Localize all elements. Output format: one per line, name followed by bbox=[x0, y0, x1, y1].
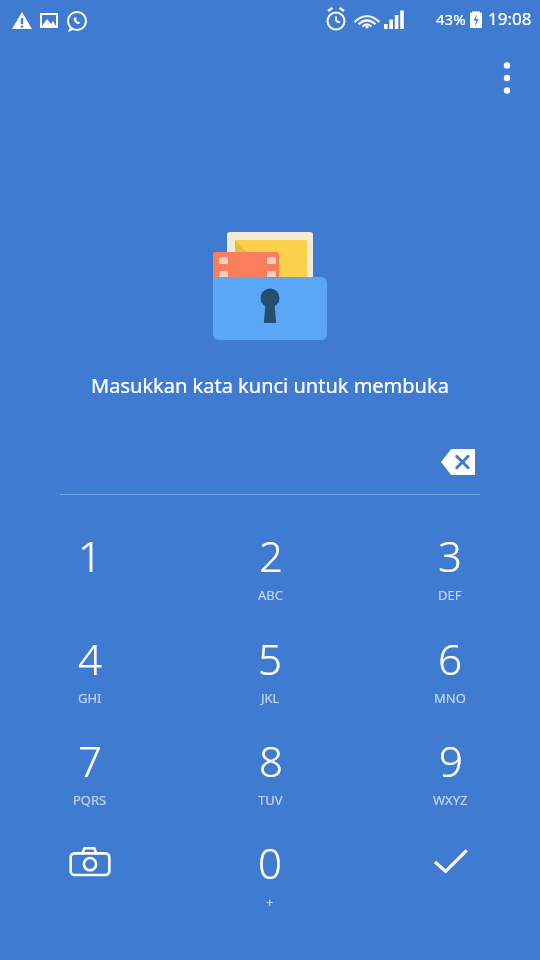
staticText: 5 bbox=[258, 630, 282, 687]
staticText: TUV bbox=[258, 791, 283, 809]
button[interactable]: 6 bbox=[360, 618, 540, 718]
button[interactable]: Confirm bbox=[360, 822, 540, 932]
button[interactable]: More options bbox=[484, 52, 530, 104]
button[interactable]: 1 bbox=[0, 515, 180, 615]
button[interactable]: Camera bbox=[0, 822, 180, 932]
button[interactable]: Backspace bbox=[428, 432, 488, 492]
staticText: PQRS bbox=[73, 791, 107, 809]
button[interactable]: 7 bbox=[0, 720, 180, 820]
button[interactable]: 0 bbox=[180, 822, 360, 932]
staticText: 0 bbox=[258, 834, 282, 891]
staticText: 3 bbox=[438, 527, 462, 584]
button[interactable]: 4 bbox=[0, 618, 180, 718]
staticText: + bbox=[266, 893, 274, 911]
staticText: Masukkan kata kunci untuk membuka bbox=[91, 372, 449, 399]
button[interactable]: 3 bbox=[360, 515, 540, 615]
button[interactable]: 2 bbox=[180, 515, 360, 615]
staticText: 43% bbox=[436, 9, 466, 29]
button[interactable]: 8 bbox=[180, 720, 360, 820]
staticText: 9 bbox=[439, 732, 463, 789]
staticText: 2 bbox=[259, 527, 283, 584]
staticText: 1 bbox=[78, 527, 102, 584]
staticText: 7 bbox=[78, 732, 102, 789]
staticText: ABC bbox=[258, 586, 283, 604]
staticText: GHI bbox=[78, 689, 102, 707]
staticText: 4 bbox=[78, 630, 102, 687]
staticText: 8 bbox=[259, 732, 283, 789]
staticText: WXYZ bbox=[433, 791, 468, 809]
staticText: 19:08 bbox=[488, 7, 532, 30]
staticText: MNO bbox=[434, 689, 466, 707]
staticText: 6 bbox=[438, 630, 462, 687]
button[interactable]: 9 bbox=[360, 720, 540, 820]
staticText: DEF bbox=[438, 586, 462, 604]
button[interactable]: 5 bbox=[180, 618, 360, 718]
staticText: JKL bbox=[261, 689, 280, 707]
